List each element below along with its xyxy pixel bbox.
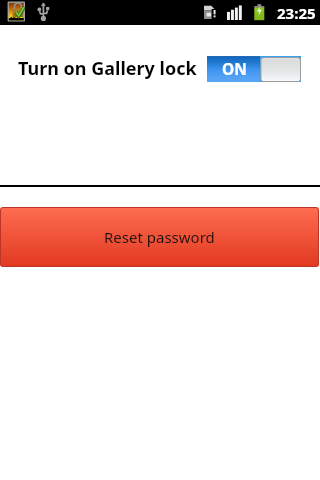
staticText: 23:25 — [277, 3, 316, 23]
button[interactable]: Gallery lock switch, on — [207, 56, 301, 82]
staticText: ON — [222, 58, 247, 79]
staticText: Reset password — [104, 227, 215, 247]
staticText: Turn on Gallery lock — [18, 56, 197, 81]
button[interactable]: Reset password — [0, 207, 319, 267]
